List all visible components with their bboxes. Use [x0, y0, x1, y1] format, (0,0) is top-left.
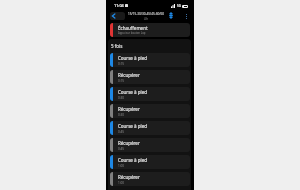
- button[interactable]: Récupérer: [110, 104, 190, 118]
- button[interactable]: Échauffement: [110, 23, 190, 37]
- staticText: Récupérer: [118, 106, 140, 112]
- button[interactable]: More options: [182, 12, 191, 21]
- button[interactable]: Reorder steps: [167, 10, 175, 21]
- button[interactable]: Course à pied: [110, 121, 190, 135]
- staticText: 1:00: [118, 181, 125, 185]
- button[interactable]: Récupérer: [110, 172, 190, 186]
- button[interactable]: Course à pied: [110, 53, 190, 67]
- staticText: 0:45: [118, 130, 125, 134]
- staticText: 0:30: [118, 113, 125, 117]
- button[interactable]: Récupérer: [110, 138, 190, 152]
- staticText: Course à pied: [118, 89, 147, 95]
- staticText: Récupérer: [118, 72, 140, 78]
- staticText: Appui sur bouton Lap: [118, 31, 146, 35]
- staticText: 5 fois: [111, 43, 123, 49]
- staticText: 11:04: [114, 3, 124, 8]
- button[interactable]: 5 fois: [108, 39, 191, 52]
- staticText: Course à pied: [118, 55, 147, 61]
- staticText: 1:00: [118, 164, 125, 168]
- button[interactable]: Course à pied: [110, 155, 190, 169]
- button[interactable]: Récupérer: [110, 70, 190, 84]
- staticText: Course à pied: [118, 157, 147, 163]
- staticText: Récupérer: [118, 174, 140, 180]
- staticText: 4 h: [144, 17, 149, 21]
- staticText: Échauffement: [118, 25, 148, 31]
- staticText: Récupérer: [118, 140, 140, 146]
- staticText: 0:30: [118, 96, 125, 100]
- staticText: 0:15: [118, 79, 125, 83]
- button[interactable]: Back: [110, 12, 125, 20]
- staticText: 0:45: [118, 147, 125, 151]
- staticText: 5G: [177, 4, 181, 8]
- staticText: 15/15-30/30-45/45-60/60: [128, 12, 164, 16]
- staticText: Course à pied: [118, 123, 147, 129]
- staticText: 0:15: [118, 62, 125, 66]
- button[interactable]: Course à pied: [110, 87, 190, 101]
